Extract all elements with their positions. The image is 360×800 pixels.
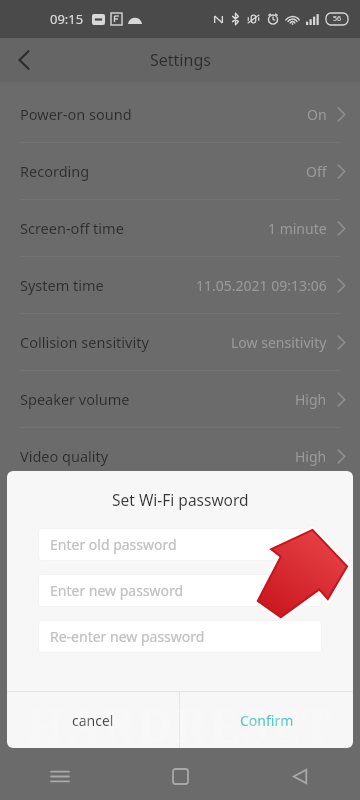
staticText: System time [20,275,104,295]
button[interactable]: Confirm [180,692,353,748]
button[interactable]: Re-enter new password [38,620,322,653]
staticText: Enter new password [50,581,184,600]
staticText: Format SD card [20,560,126,580]
button[interactable]: Home [120,752,240,800]
button[interactable]: Video quality [0,428,360,484]
staticText: Set Wi-Fi password [112,489,249,510]
staticText: Recording [20,161,90,181]
staticText: Settings [150,49,211,71]
staticText: 09:15 [50,10,84,28]
staticText: High [295,447,327,466]
button[interactable]: Back [0,38,48,82]
button[interactable]: Recording [0,143,360,199]
staticText: .INFO [286,750,341,773]
button[interactable]: Screen-off time [0,200,360,256]
staticText: Collision sensitivity [20,332,149,352]
staticText: 1 minute [268,219,327,238]
staticText: Screen-off time [20,218,124,238]
button[interactable]: Enter old password [38,528,322,561]
staticText: Confirm [240,711,294,730]
button[interactable]: Power-on sound [0,86,360,142]
staticText: Enter old password [50,535,177,554]
staticText: cancel [72,711,114,730]
button[interactable]: Speaker volume [0,371,360,427]
button[interactable]: Enter new password [38,574,322,607]
staticText: Power-on sound [20,104,132,124]
staticText: Low sensitivity [231,333,327,352]
button[interactable]: Recents [0,752,120,800]
staticText: Wi-Fi password [20,503,123,523]
staticText: HARDRESET [26,694,334,750]
staticText: 11.05.2021 09:13:06 [196,276,327,295]
staticText: On [307,105,327,124]
staticText: Re-enter new password [50,627,205,646]
button[interactable]: System time [0,257,360,313]
staticText: Video quality [20,446,109,466]
staticText: Speaker volume [20,389,130,409]
staticText: 56 [333,14,342,24]
staticText: High [295,390,327,409]
button[interactable]: Back [240,752,360,800]
staticText: Off [306,162,327,181]
button[interactable]: Collision sensitivity [0,314,360,370]
button[interactable]: Format SD card [0,542,360,598]
button[interactable]: Wi-Fi password [0,485,360,541]
button[interactable]: cancel [7,692,179,748]
